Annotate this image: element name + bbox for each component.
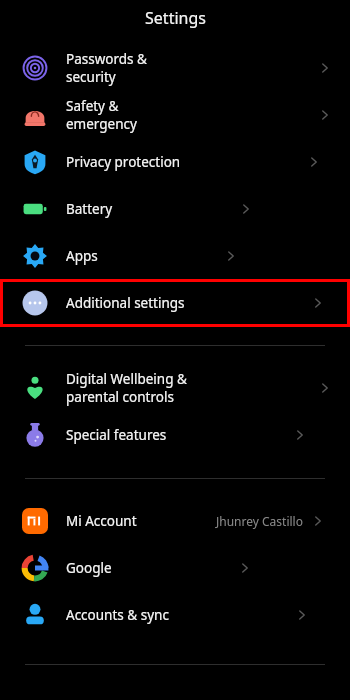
staticText: Mi Account xyxy=(66,512,137,530)
staticText: Special features xyxy=(66,426,167,444)
staticText: Settings xyxy=(145,7,206,29)
button[interactable]: Accounts & sync xyxy=(0,591,350,638)
staticText: Jhunrey Castillo xyxy=(216,513,303,529)
button[interactable]: Privacy protection xyxy=(0,138,350,185)
staticText: Accounts & sync xyxy=(66,606,169,624)
staticText: Digital Wellbeing & parental controls xyxy=(66,370,192,406)
staticText: Google xyxy=(66,559,112,577)
button[interactable]: Safety & emergency xyxy=(0,91,350,138)
staticText: Apps xyxy=(66,247,98,265)
button[interactable]: Additional settings xyxy=(0,279,350,326)
button[interactable]: Digital Wellbeing & parental controls xyxy=(0,364,350,411)
button[interactable]: Special features xyxy=(0,411,350,458)
button[interactable]: Battery xyxy=(0,185,350,232)
button[interactable]: Mi Account xyxy=(0,497,350,544)
staticText: Passwords & security xyxy=(66,50,192,86)
button[interactable]: Passwords & security xyxy=(0,44,350,91)
staticText: Additional settings xyxy=(66,294,185,312)
staticText: Safety & emergency xyxy=(66,97,192,133)
staticText: Battery xyxy=(66,200,113,218)
button[interactable]: Apps xyxy=(0,232,350,279)
staticText: Privacy protection xyxy=(66,153,181,171)
button[interactable]: Google xyxy=(0,544,350,591)
